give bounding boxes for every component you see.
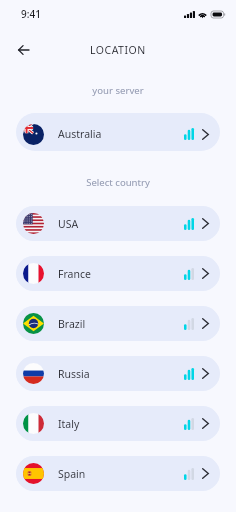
button[interactable]: Italy (16, 406, 220, 441)
button[interactable]: Russia (16, 356, 220, 391)
staticText: France (58, 267, 91, 281)
button[interactable]: Spain (16, 456, 220, 491)
staticText: Russia (58, 367, 90, 381)
staticText: USA (58, 217, 79, 231)
button[interactable]: USA (16, 206, 220, 241)
button[interactable]: Australia (16, 113, 220, 151)
staticText: Select country (0, 176, 236, 189)
staticText: your server (0, 84, 236, 97)
staticText: LOCATION (90, 43, 146, 57)
staticText: 9:41 (21, 7, 41, 21)
staticText: Brazil (58, 317, 86, 331)
staticText: Italy (58, 417, 80, 431)
button[interactable]: France (16, 256, 220, 291)
staticText: Australia (58, 127, 102, 141)
staticText: Spain (58, 467, 86, 481)
button[interactable]: Back (9, 36, 37, 64)
button[interactable]: Brazil (16, 306, 220, 341)
